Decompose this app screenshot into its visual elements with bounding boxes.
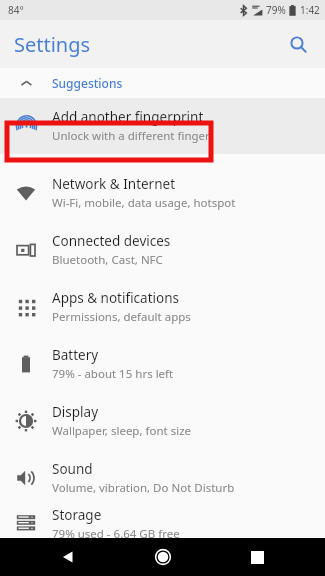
button[interactable]: Home: [136, 538, 190, 576]
staticText: Apps & notifications: [52, 289, 179, 307]
button[interactable]: Battery: [0, 335, 325, 392]
button[interactable]: Recents: [230, 538, 284, 576]
staticText: Wi-Fi, mobile, data usage, hotspot: [52, 195, 236, 211]
button[interactable]: Storage: [0, 506, 325, 538]
button[interactable]: Add another fingerprint: [0, 98, 325, 154]
staticText: Connected devices: [52, 232, 171, 250]
staticText: 79% used - 6.64 GB free: [52, 526, 180, 538]
staticText: Sound: [52, 460, 93, 478]
staticText: Wallpaper, sleep, font size: [52, 423, 192, 439]
staticText: 1:42: [300, 3, 320, 17]
staticText: 79%: [266, 3, 286, 17]
staticText: 79% - about 15 hrs left: [52, 366, 174, 382]
button[interactable]: Apps & notifications: [0, 278, 325, 335]
staticText: Settings: [14, 31, 91, 58]
staticText: 84°: [8, 3, 24, 17]
staticText: Display: [52, 403, 99, 421]
staticText: Volume, vibration, Do Not Disturb: [52, 480, 235, 496]
staticText: Battery: [52, 346, 99, 364]
staticText: Storage: [52, 506, 102, 524]
button[interactable]: Back: [41, 538, 95, 576]
button[interactable]: Sound: [0, 449, 325, 506]
button[interactable]: Connected devices: [0, 221, 325, 278]
button[interactable]: Display: [0, 392, 325, 449]
staticText: Network & Internet: [52, 175, 176, 193]
button[interactable]: Suggestions: [0, 68, 325, 98]
staticText: Bluetooth, Cast, NFC: [52, 252, 163, 268]
staticText: Add another fingerprint: [52, 108, 204, 126]
staticText: Suggestions: [52, 75, 123, 91]
staticText: Unlock with a different finger: [52, 128, 210, 144]
staticText: Permissions, default apps: [52, 309, 191, 325]
button[interactable]: Network & Internet: [0, 164, 325, 221]
button[interactable]: Search: [279, 25, 317, 63]
